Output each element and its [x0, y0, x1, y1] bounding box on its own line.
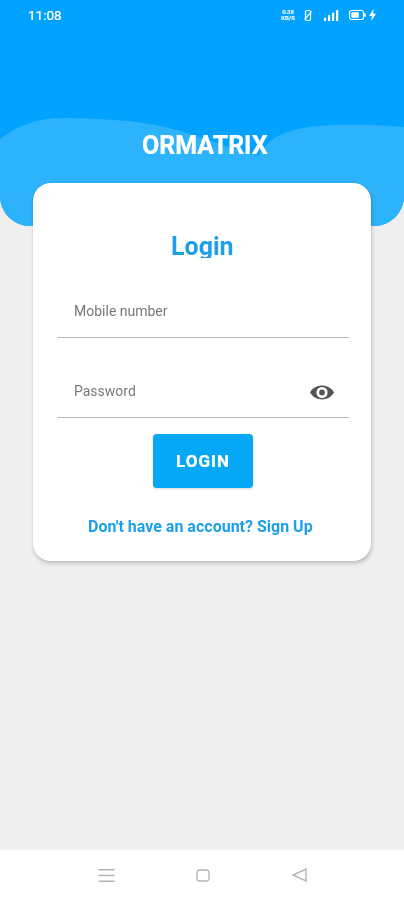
staticText: Don't have an account? Sign Up — [88, 517, 313, 536]
button[interactable]: LOGIN — [153, 434, 253, 488]
staticText: Password — [74, 383, 136, 399]
button[interactable]: Show password — [307, 377, 337, 407]
button[interactable]: Don't have an account? Sign Up — [82, 514, 319, 539]
button[interactable]: Mobile number — [58, 295, 349, 340]
staticText: ORMATRIX — [142, 131, 268, 159]
staticText: 0.38 KB/S — [281, 8, 295, 22]
button[interactable]: Home — [178, 850, 228, 900]
staticText: 11:08 — [28, 7, 62, 23]
staticText: Mobile number — [74, 303, 168, 319]
button[interactable]: Back — [274, 850, 324, 900]
staticText: LOGIN — [176, 451, 230, 471]
staticText: Login — [171, 232, 234, 258]
button[interactable]: Recent apps — [81, 850, 131, 900]
button[interactable]: Password — [58, 375, 349, 405]
